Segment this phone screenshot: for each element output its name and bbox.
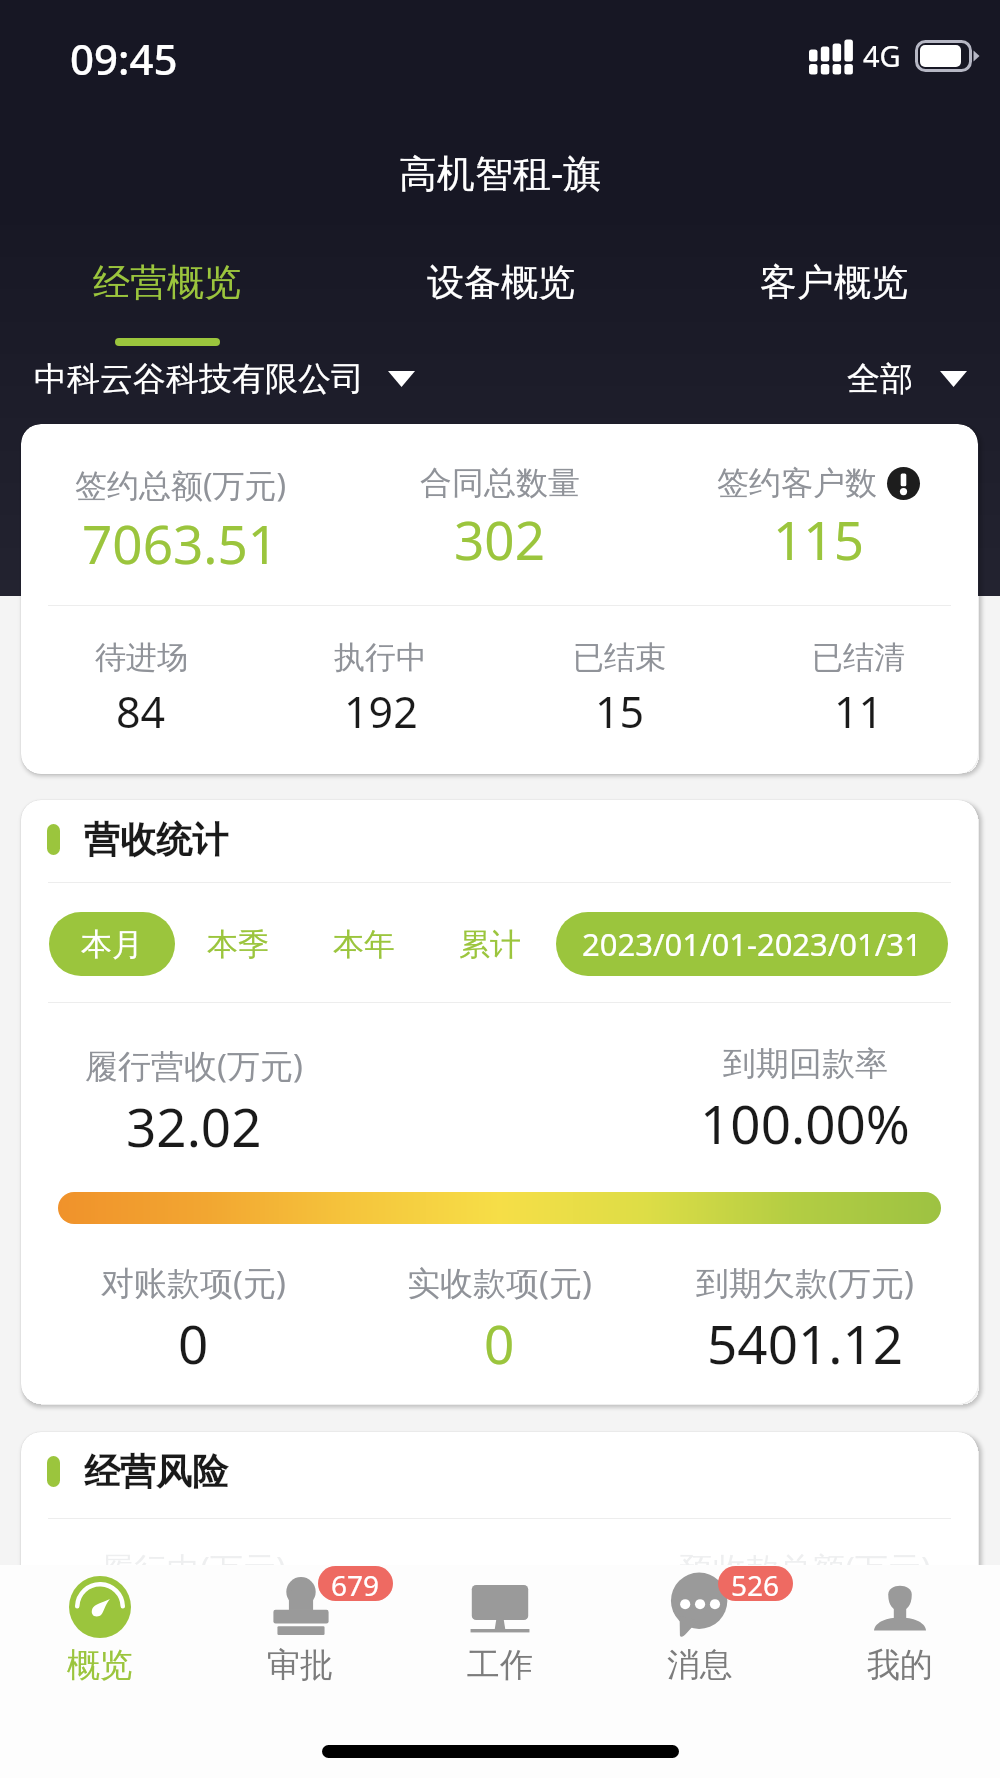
staticText: 本月 — [81, 925, 143, 964]
button[interactable]: 本月 — [49, 912, 175, 976]
staticText: 本季 — [207, 925, 269, 964]
button[interactable]: 经营概览 — [0, 259, 334, 346]
button[interactable]: 中科云谷科技有限公司 — [34, 358, 415, 400]
button[interactable]: 签约客户数 — [659, 463, 978, 575]
button[interactable]: 执行中 — [261, 638, 500, 741]
staticText: 11 — [834, 682, 884, 741]
other: More info — [887, 467, 920, 500]
button[interactable]: 到期回款率 — [652, 1043, 958, 1159]
staticText: 预收款总额(万元) — [680, 1546, 931, 1591]
staticText: 对账款项(元) — [101, 1260, 286, 1305]
button[interactable]: 526 — [600, 1570, 800, 1692]
staticText: 115 — [773, 503, 864, 575]
staticText: 84 — [116, 682, 166, 741]
staticText: 已结束 — [573, 638, 666, 677]
staticText: 设备概览 — [427, 259, 575, 306]
staticText: 我的 — [867, 1644, 933, 1686]
staticText: 0 — [484, 1307, 515, 1379]
button[interactable]: 客户概览 — [667, 259, 1000, 346]
button[interactable]: 到期欠款(万元) — [652, 1260, 958, 1379]
button[interactable]: 对账款项(元) — [41, 1260, 346, 1379]
staticText: 526 — [731, 1566, 780, 1601]
staticText: 签约客户数 — [717, 463, 877, 503]
staticText: 消息 — [667, 1644, 733, 1686]
staticText: 本年 — [333, 925, 395, 964]
staticText: 100.00% — [700, 1087, 910, 1159]
staticText: 0 — [178, 1307, 209, 1379]
staticText: 待进场 — [95, 638, 188, 677]
staticText: 全部 — [847, 358, 913, 400]
staticText: 履行中(万元) — [101, 1546, 286, 1591]
staticText: 到期回款率 — [723, 1043, 888, 1085]
staticText: 签约总额(万元) — [75, 463, 287, 507]
staticText: 2023/01/01-2023/01/31 — [582, 923, 922, 965]
staticText: 概览 — [67, 1644, 133, 1686]
staticText: 合同总数量 — [420, 463, 580, 503]
button[interactable]: 签约总额(万元) — [21, 463, 340, 579]
button[interactable]: 已结清 — [739, 638, 978, 741]
button[interactable]: 待进场 — [21, 638, 261, 741]
staticText: 192 — [344, 682, 418, 741]
button[interactable]: 概览 — [0, 1570, 200, 1692]
staticText: 执行中 — [334, 638, 427, 677]
button[interactable]: 本季 — [175, 912, 301, 976]
staticText: 实收款项(元) — [407, 1260, 592, 1305]
staticText: 客户概览 — [760, 259, 908, 306]
button[interactable]: 679 — [200, 1570, 400, 1692]
button[interactable]: 实收款项(元) — [346, 1260, 652, 1379]
button[interactable]: 工作 — [400, 1570, 600, 1692]
staticText: 09:45 — [70, 30, 178, 87]
staticText: 中科云谷科技有限公司 — [34, 358, 364, 400]
staticText: 已结清 — [812, 638, 905, 677]
staticText: 工作 — [467, 1644, 533, 1686]
staticText: 679 — [331, 1566, 380, 1601]
staticText: 302 — [454, 503, 545, 575]
staticText: 15 — [595, 682, 645, 741]
button[interactable]: 我的 — [800, 1570, 1000, 1692]
staticText: 高机智租-旗 — [399, 146, 602, 198]
staticText: 营收统计 — [84, 817, 228, 862]
staticText: 经营风险 — [84, 1449, 228, 1494]
staticText: 4G — [863, 36, 901, 75]
staticText: 经营概览 — [93, 259, 241, 306]
staticText: 履行营收(万元) — [85, 1043, 303, 1088]
staticText: 32.02 — [126, 1090, 262, 1162]
button[interactable]: 2023/01/01-2023/01/31 — [556, 912, 948, 976]
button[interactable]: 已结束 — [500, 638, 739, 741]
button[interactable]: 合同总数量 — [340, 463, 659, 575]
staticText: 累计 — [459, 925, 521, 964]
button[interactable]: 设备概览 — [334, 259, 667, 346]
staticText: 5401.12 — [707, 1307, 904, 1379]
staticText: 到期欠款(万元) — [696, 1260, 914, 1305]
staticText: 7063.51 — [82, 507, 279, 579]
button[interactable]: 累计 — [427, 912, 553, 976]
button[interactable]: 履行营收(万元) — [41, 1043, 346, 1162]
staticText: 审批 — [267, 1644, 333, 1686]
button[interactable]: 全部 — [847, 358, 967, 400]
button[interactable]: 本年 — [301, 912, 427, 976]
